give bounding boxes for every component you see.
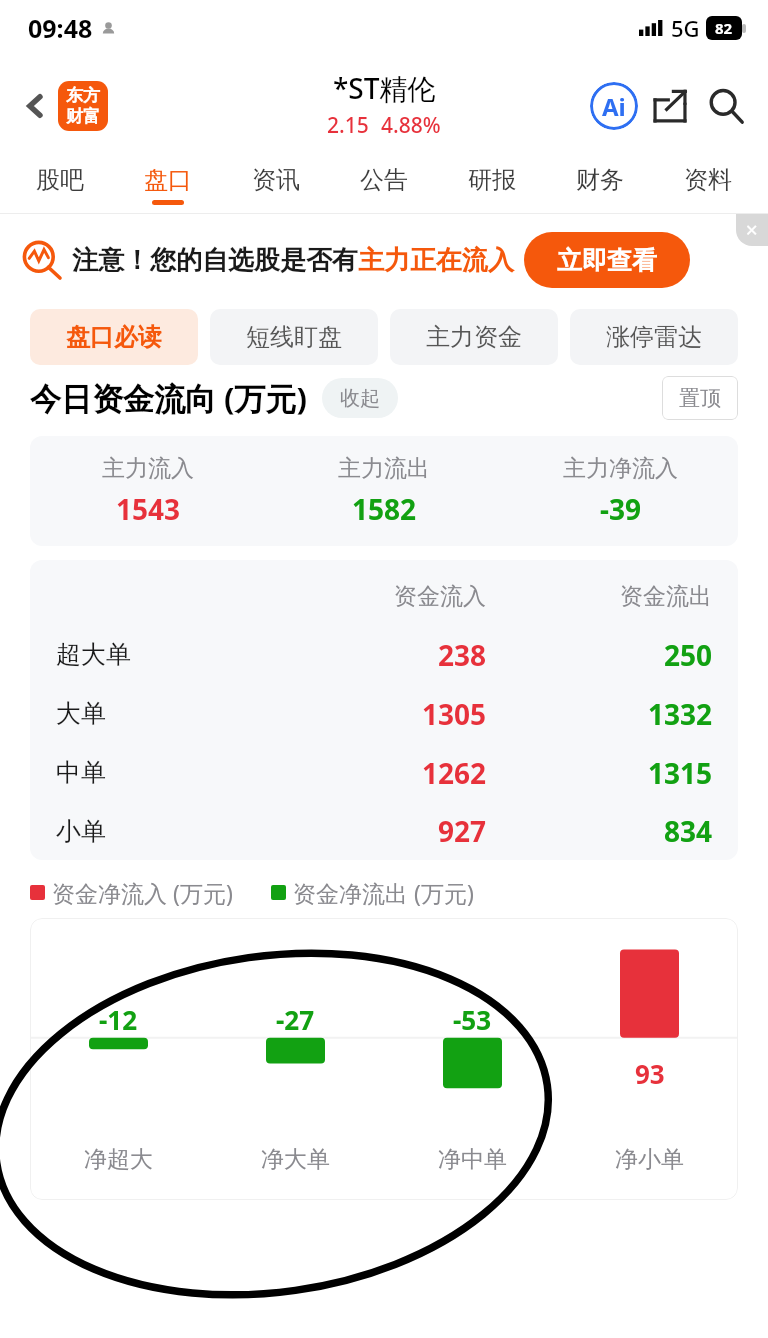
staticText: 小单	[56, 816, 260, 847]
staticText: 1305	[260, 695, 486, 733]
staticText: 5G	[671, 13, 700, 43]
staticText: 4.88%	[381, 111, 441, 140]
staticText: 短线盯盘	[246, 322, 342, 352]
staticText: 净小单	[615, 1145, 684, 1174]
button[interactable]: Search	[698, 78, 754, 134]
staticText: -53	[453, 1002, 492, 1037]
staticText: -12	[99, 1002, 138, 1037]
button[interactable]: 小单	[56, 802, 712, 860]
staticText: 盘口必读	[66, 322, 162, 352]
staticText: 中单	[56, 757, 260, 788]
button[interactable]: 置顶	[662, 376, 738, 420]
staticText: 主力流入	[102, 454, 194, 483]
staticText: 涨停雷达	[606, 322, 702, 352]
button[interactable]: 中单	[56, 743, 712, 802]
staticText: 净大单	[261, 1145, 330, 1174]
staticText: 834	[486, 812, 712, 850]
button[interactable]: Back	[14, 84, 58, 128]
staticText: 净中单	[438, 1145, 507, 1174]
button[interactable]: 大单	[56, 684, 712, 743]
staticText: 股吧	[36, 165, 84, 195]
staticText: 1262	[260, 754, 486, 792]
staticText: 公告	[360, 165, 408, 195]
staticText: 收起	[340, 386, 380, 411]
staticText: 1315	[486, 754, 712, 792]
button[interactable]: 东方	[58, 81, 108, 131]
button[interactable]: 资讯	[234, 156, 318, 214]
staticText: 资料	[684, 165, 732, 195]
staticText: 1543	[116, 490, 181, 528]
staticText: 主力净流入	[563, 454, 678, 483]
button[interactable]: AI	[586, 78, 642, 134]
staticText: -27	[276, 1002, 315, 1037]
staticText: 1332	[486, 695, 712, 733]
staticText: 主力流出	[338, 454, 430, 483]
staticText: 立即查看	[557, 245, 657, 276]
staticText: 资金净流入 (万元)	[52, 877, 233, 908]
button[interactable]: 盘口必读	[30, 309, 198, 365]
button[interactable]: 财务	[558, 156, 642, 214]
staticText: Ai	[602, 90, 626, 123]
staticText: 资讯	[252, 165, 300, 195]
staticText: 超大单	[56, 639, 260, 670]
staticText: 大单	[56, 698, 260, 729]
staticText: -39	[600, 490, 641, 528]
button[interactable]: Close	[736, 214, 768, 246]
staticText: 主力正在流入	[358, 244, 514, 277]
staticText: *ST精伦	[333, 69, 436, 107]
staticText: 东方	[66, 85, 100, 106]
staticText: 93	[635, 1056, 665, 1091]
staticText: ✕	[745, 221, 759, 240]
staticText: 资金流入	[260, 582, 486, 611]
button[interactable]: 主力资金	[390, 309, 558, 365]
button[interactable]: 研报	[450, 156, 534, 214]
staticText: 财务	[576, 165, 624, 195]
button[interactable]: 股吧	[18, 156, 102, 214]
staticText: 2.15	[327, 111, 369, 140]
staticText: 250	[486, 636, 712, 674]
staticText: 资金流出	[486, 582, 712, 611]
button[interactable]: 立即查看	[524, 232, 690, 288]
button[interactable]: 资料	[666, 156, 750, 214]
staticText: 置顶	[679, 385, 721, 411]
staticText: 927	[260, 812, 486, 850]
staticText: 今日资金流向 (万元)	[30, 377, 308, 419]
staticText: 1582	[352, 490, 417, 528]
button[interactable]: 短线盯盘	[210, 309, 378, 365]
staticText: 财富	[66, 106, 100, 127]
staticText: 238	[260, 636, 486, 674]
staticText: 盘口	[144, 165, 192, 195]
staticText: 研报	[468, 165, 516, 195]
button[interactable]: 公告	[342, 156, 426, 214]
button[interactable]: 超大单	[56, 625, 712, 684]
button[interactable]: 涨停雷达	[570, 309, 738, 365]
button[interactable]: 主力流入	[30, 436, 738, 546]
staticText: 净超大	[84, 1145, 153, 1174]
staticText: 资金净流出 (万元)	[293, 877, 474, 908]
button[interactable]: 盘口	[126, 156, 210, 214]
button[interactable]: Share	[642, 78, 698, 134]
button[interactable]: 收起	[322, 378, 398, 418]
staticText: 主力资金	[426, 322, 522, 352]
staticText: 注意！您的自选股是否有	[72, 244, 358, 277]
staticText: 09:48	[28, 11, 93, 45]
staticText: 82	[715, 18, 733, 38]
